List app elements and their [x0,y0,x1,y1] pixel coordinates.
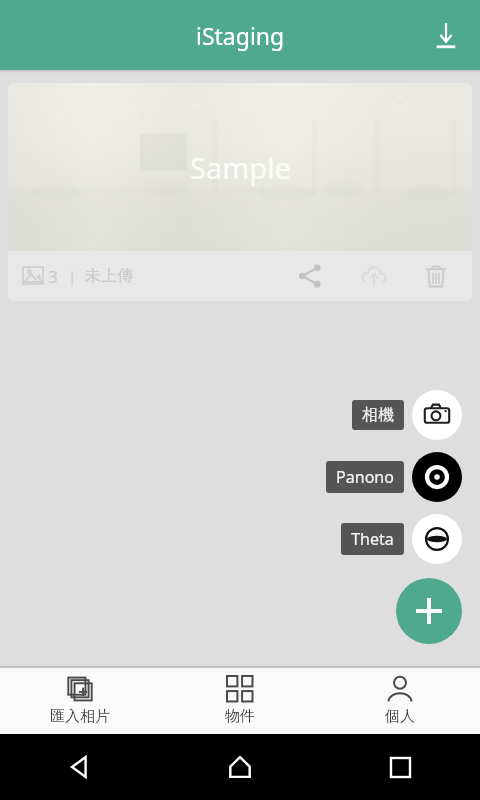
button[interactable]: Camera [412,390,462,440]
staticText: Panono [336,466,394,488]
button[interactable]: Back [0,734,160,800]
staticText: 3 [48,265,58,288]
staticText: | [68,266,77,286]
staticText: 匯入相片 [50,707,110,726]
button[interactable]: Theta camera [412,514,462,564]
button[interactable]: 相機 [352,400,404,430]
button[interactable]: Recents [320,734,480,800]
button[interactable]: 個人 [320,668,480,734]
staticText: Theta [351,528,394,550]
button[interactable]: 匯入相片 [0,668,160,734]
button[interactable]: Theta [341,523,404,555]
button[interactable]: Delete [414,254,458,298]
staticText: 物件 [225,707,255,726]
button[interactable]: Panono camera [412,452,462,502]
staticText: 相機 [362,405,394,425]
button[interactable]: Sample [8,83,472,301]
button[interactable]: Panono [326,461,404,493]
button[interactable]: Home [160,734,320,800]
staticText: iStaging [196,20,285,51]
staticText: 個人 [385,707,415,726]
staticText: Sample [190,148,291,187]
staticText: 未上傳 [85,266,133,286]
button[interactable]: 物件 [160,668,320,734]
button[interactable]: Share [288,254,332,298]
button[interactable]: Download [422,11,470,59]
button[interactable]: Add [396,578,462,644]
